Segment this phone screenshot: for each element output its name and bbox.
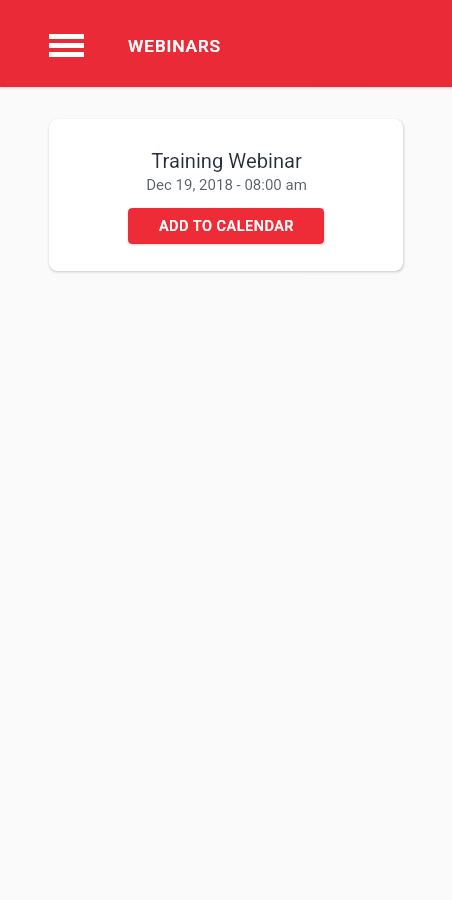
staticText: Training Webinar [151,149,302,173]
button[interactable]: ADD TO CALENDAR [128,208,324,244]
staticText: ADD TO CALENDAR [159,218,294,235]
staticText: WEBINARS [128,36,221,56]
button[interactable]: Open navigation menu [41,22,91,68]
staticText: Dec 19, 2018 - 08:00 am [146,176,307,194]
